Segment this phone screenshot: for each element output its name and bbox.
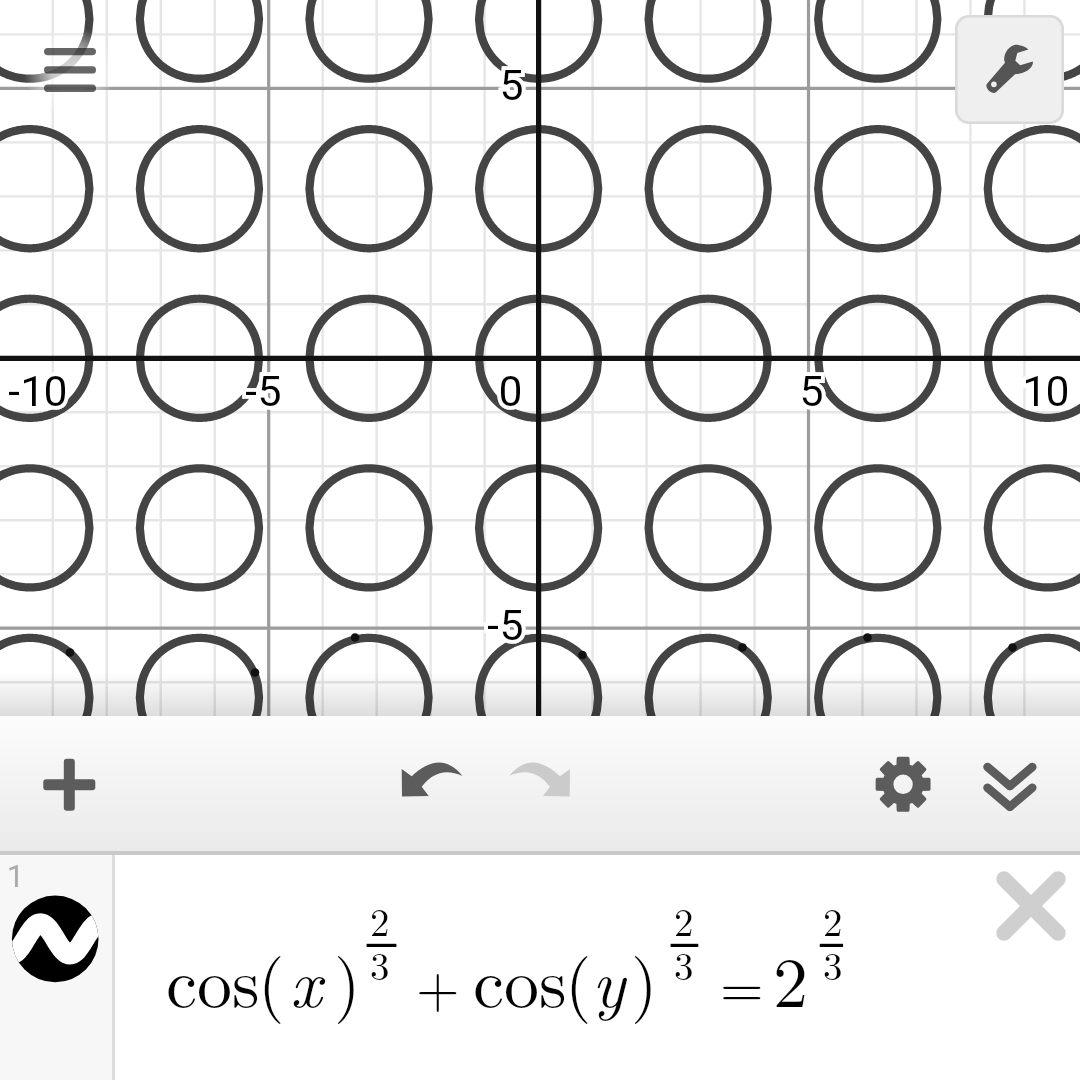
button[interactable]: Collapse expression list bbox=[968, 742, 1053, 827]
button[interactable]: Settings bbox=[861, 742, 946, 827]
button[interactable]: Redo bbox=[497, 742, 582, 827]
button[interactable]: Expression 1 style bbox=[0, 855, 112, 1080]
button[interactable]: Menu bbox=[14, 16, 130, 132]
button[interactable]: Graph settings bbox=[955, 15, 1064, 124]
button[interactable]: Delete expression bbox=[981, 856, 1080, 956]
button[interactable]: cos(x)^(2/3) + cos(y)^(2/3) = 2^(2/3) bbox=[115, 855, 1080, 1080]
button[interactable]: Add expression bbox=[27, 742, 112, 827]
button[interactable]: Undo bbox=[389, 742, 474, 827]
